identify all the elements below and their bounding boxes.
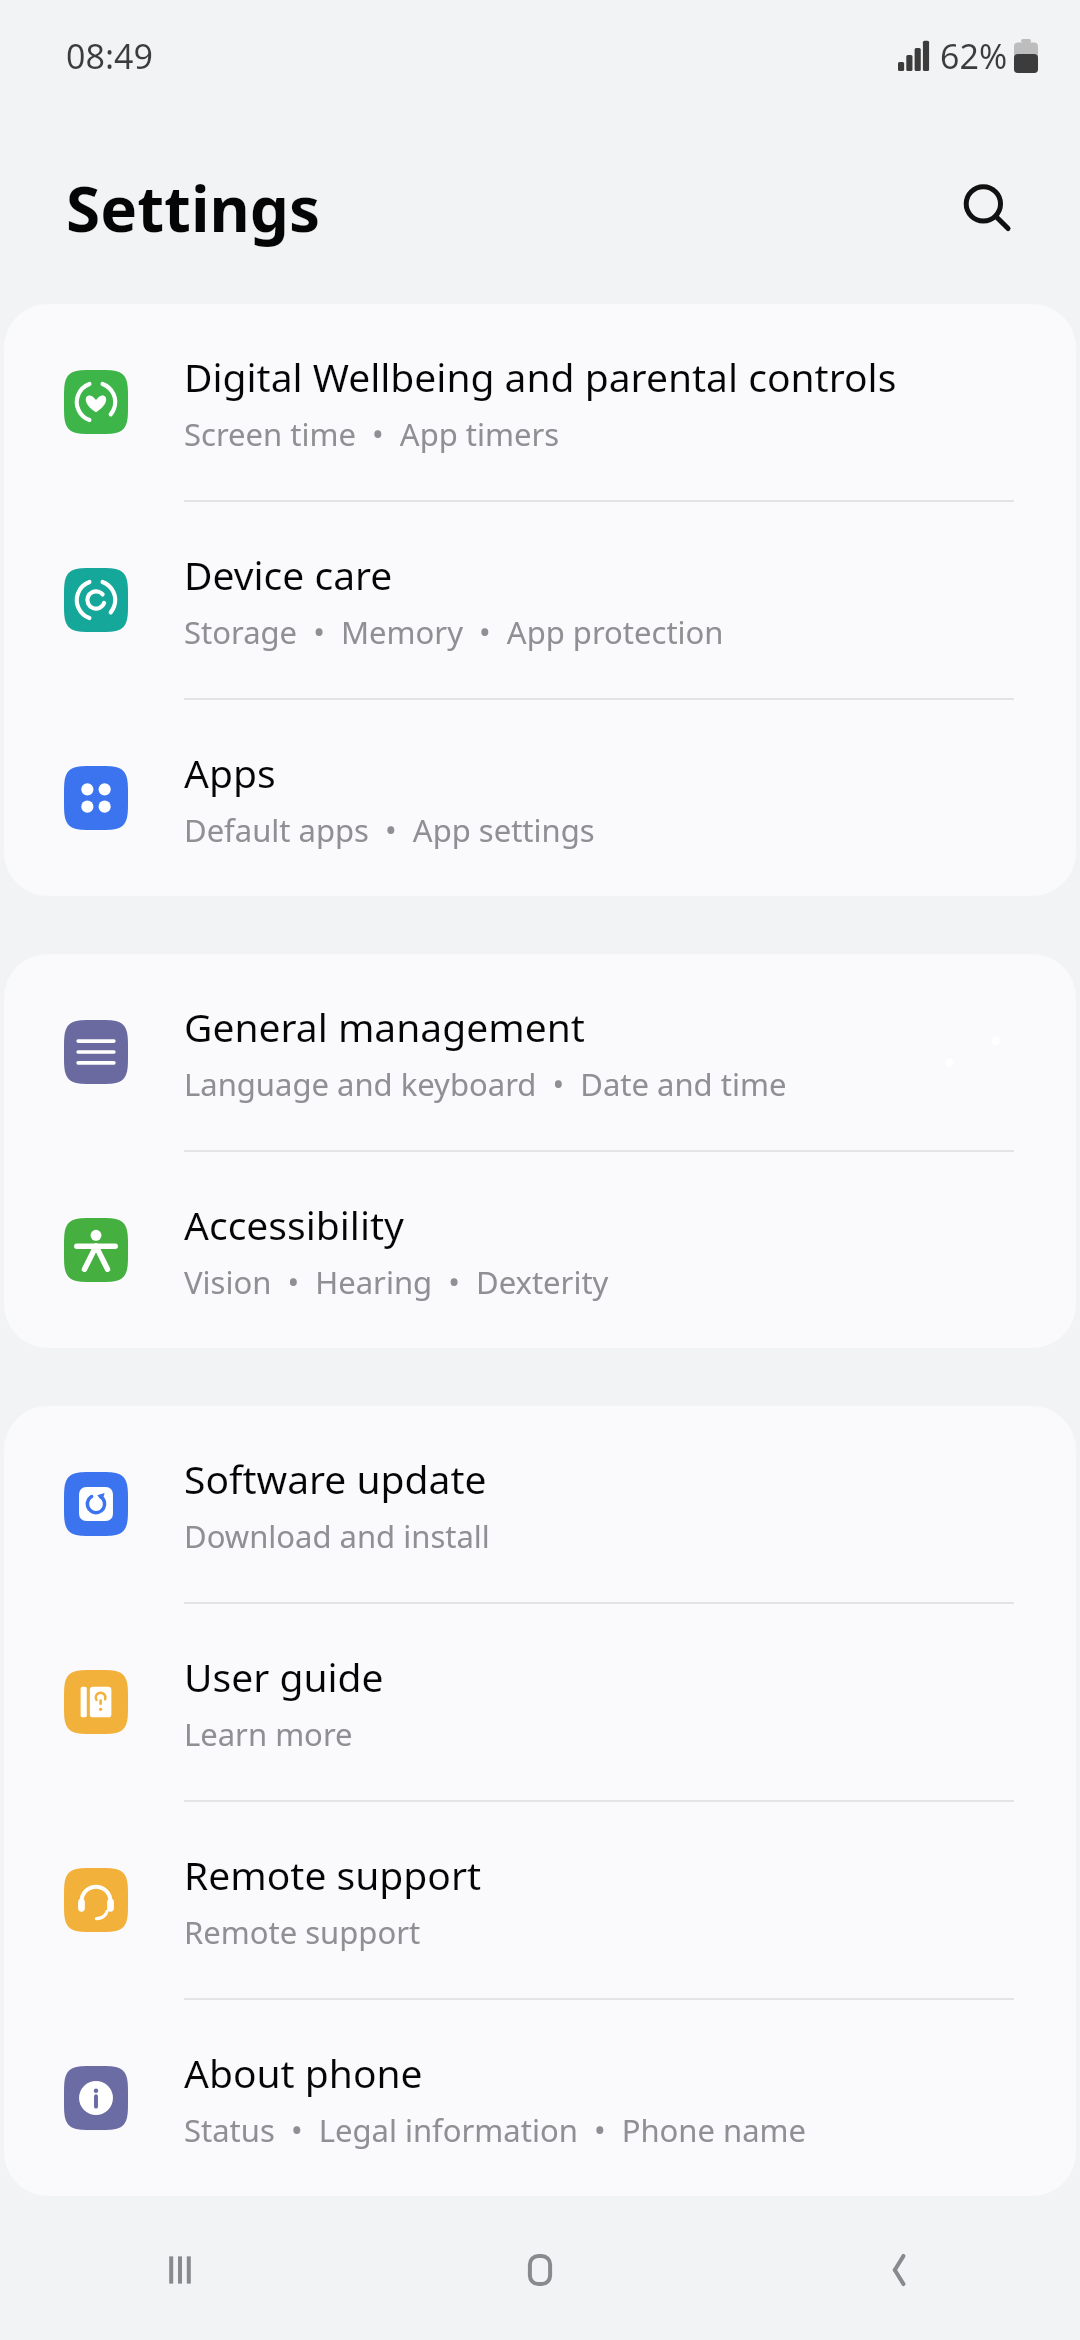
- staticText: Software update: [184, 1452, 487, 1505]
- staticText: Download and install: [184, 1515, 490, 1557]
- staticText: Remote support: [184, 1911, 421, 1953]
- staticText: Default apps • App settings: [184, 809, 595, 851]
- button[interactable]: Home: [360, 2200, 720, 2340]
- staticText: Settings: [66, 166, 321, 250]
- button[interactable]: Back: [720, 2200, 1080, 2340]
- staticText: Vision • Hearing • Dexterity: [184, 1261, 609, 1303]
- button[interactable]: Remote support: [4, 1802, 1076, 2000]
- button[interactable]: Software update: [4, 1406, 1076, 1604]
- button[interactable]: About phone: [4, 2000, 1076, 2196]
- staticText: About phone: [184, 2046, 423, 2099]
- button[interactable]: Recents: [0, 2200, 360, 2340]
- staticText: Device care: [184, 548, 393, 601]
- staticText: Screen time • App timers: [184, 413, 560, 455]
- button[interactable]: Device care: [4, 502, 1076, 700]
- staticText: 08:49: [66, 33, 153, 79]
- button[interactable]: Digital Wellbeing and parental controls: [4, 304, 1076, 502]
- staticText: Learn more: [184, 1713, 353, 1755]
- staticText: 62%: [940, 33, 1008, 79]
- button[interactable]: Apps: [4, 700, 1076, 896]
- button[interactable]: User guide: [4, 1604, 1076, 1802]
- button[interactable]: Accessibility: [4, 1152, 1076, 1348]
- button[interactable]: Search: [944, 165, 1030, 251]
- staticText: User guide: [184, 1650, 384, 1703]
- staticText: General management: [184, 1000, 585, 1053]
- button[interactable]: General management: [4, 954, 1076, 1152]
- staticText: Remote support: [184, 1848, 482, 1901]
- staticText: Storage • Memory • App protection: [184, 611, 724, 653]
- staticText: Accessibility: [184, 1198, 404, 1251]
- staticText: Digital Wellbeing and parental controls: [184, 350, 897, 403]
- staticText: Language and keyboard • Date and time: [184, 1063, 787, 1105]
- staticText: Apps: [184, 746, 276, 799]
- staticText: Status • Legal information • Phone name: [184, 2109, 807, 2151]
